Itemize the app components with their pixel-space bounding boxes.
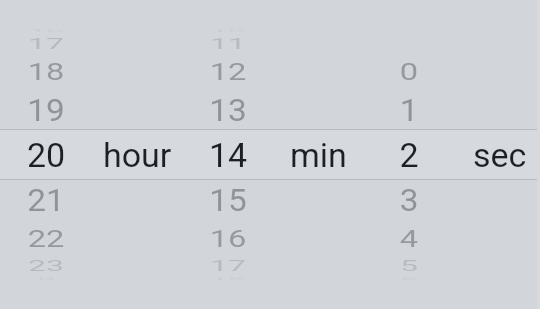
button[interactable]: Second: [364, 0, 454, 309]
staticText: hour: [103, 135, 172, 175]
staticText: 13: [184, 92, 272, 128]
staticText: 4: [366, 224, 452, 253]
staticText: 16: [185, 224, 271, 253]
staticText: 18: [3, 57, 89, 86]
staticText: 3: [365, 181, 453, 218]
staticText: 1: [365, 92, 453, 128]
button[interactable]: Minute: [183, 0, 273, 309]
button[interactable]: min: [258, 0, 378, 309]
staticText: 11: [186, 35, 270, 52]
staticText: 17: [186, 258, 270, 275]
staticText: min: [290, 135, 347, 175]
staticText: 15: [184, 181, 272, 218]
staticText: 19: [2, 92, 90, 128]
button[interactable]: sec: [440, 0, 540, 309]
button[interactable]: Hour: [1, 0, 91, 309]
staticText: 12: [185, 57, 271, 86]
staticText: 5: [367, 258, 451, 275]
staticText: 23: [4, 258, 88, 275]
button[interactable]: hour: [77, 0, 197, 309]
staticText: sec: [473, 135, 527, 175]
staticText: 21: [2, 181, 90, 218]
staticText: 0: [366, 57, 452, 86]
staticText: 14: [183, 135, 273, 175]
staticText: 2: [364, 135, 454, 175]
staticText: 17: [4, 35, 88, 52]
staticText: 22: [3, 224, 89, 253]
staticText: 20: [1, 135, 91, 175]
